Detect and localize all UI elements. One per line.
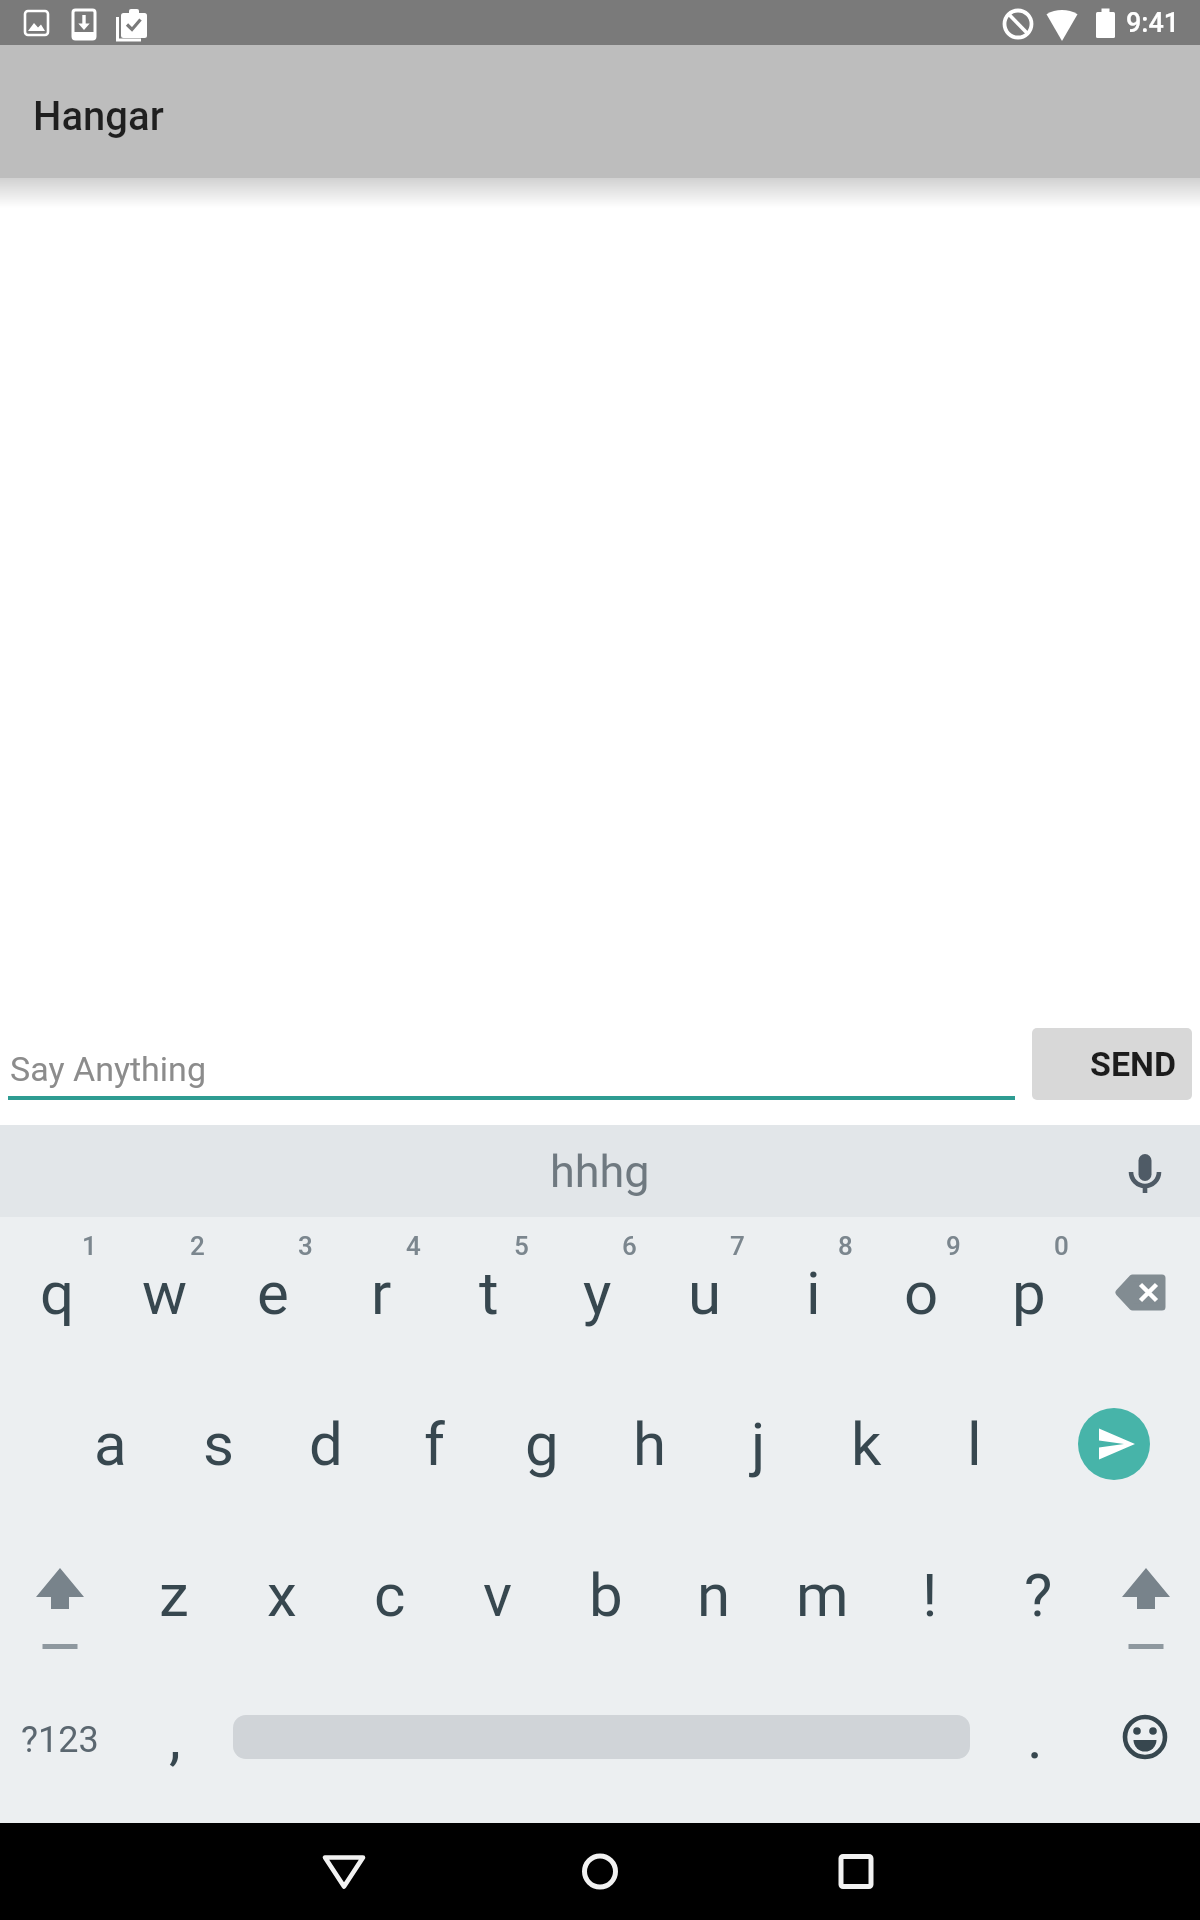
staticText: z <box>159 1560 189 1630</box>
staticText: , <box>169 1702 181 1772</box>
button[interactable]: , <box>120 1671 230 1823</box>
staticText: 3 <box>298 1231 313 1261</box>
button[interactable] <box>0 1519 120 1671</box>
button[interactable] <box>796 1823 916 1920</box>
staticText: . <box>1027 1702 1043 1772</box>
button[interactable]: e <box>219 1217 327 1368</box>
button[interactable]: t <box>435 1217 543 1368</box>
button[interactable] <box>540 1823 660 1920</box>
staticText: 9:41 <box>1126 7 1180 39</box>
button[interactable]: l <box>920 1368 1028 1519</box>
staticText: 7 <box>730 1231 745 1261</box>
staticText: m <box>796 1560 849 1630</box>
button[interactable] <box>1083 1217 1200 1368</box>
staticText: j <box>751 1409 766 1479</box>
button[interactable]: y <box>543 1217 651 1368</box>
button[interactable]: ! <box>876 1519 984 1671</box>
button[interactable]: f <box>380 1368 488 1519</box>
button[interactable]: v <box>444 1519 552 1671</box>
button[interactable]: p <box>975 1217 1083 1368</box>
staticText: x <box>267 1560 297 1630</box>
button[interactable]: o <box>867 1217 975 1368</box>
staticText: b <box>589 1560 623 1630</box>
staticText: g <box>525 1409 559 1479</box>
button[interactable]: q <box>3 1217 111 1368</box>
staticText: u <box>688 1258 722 1328</box>
button[interactable] <box>284 1823 404 1920</box>
staticText: ?123 <box>21 1719 99 1761</box>
staticText: ! <box>922 1560 938 1630</box>
staticText: Hangar <box>33 93 164 140</box>
staticText: a <box>94 1409 127 1479</box>
staticText: Say Anything <box>10 1049 206 1089</box>
button[interactable] <box>230 1671 970 1823</box>
staticText: p <box>1012 1258 1046 1328</box>
button[interactable]: c <box>336 1519 444 1671</box>
button[interactable]: x <box>228 1519 336 1671</box>
staticText: 9 <box>946 1231 961 1261</box>
staticText: s <box>203 1409 234 1479</box>
staticText: d <box>309 1409 343 1479</box>
button[interactable]: s <box>164 1368 272 1519</box>
staticText: v <box>483 1560 513 1630</box>
staticText: f <box>424 1409 445 1479</box>
button[interactable]: g <box>488 1368 596 1519</box>
staticText: n <box>697 1560 731 1630</box>
staticText: q <box>40 1258 75 1328</box>
staticText: w <box>142 1258 188 1328</box>
button[interactable]: . <box>970 1671 1100 1823</box>
button[interactable]: z <box>120 1519 228 1671</box>
button[interactable]: a <box>56 1368 164 1519</box>
staticText: e <box>257 1258 289 1328</box>
button[interactable]: r <box>327 1217 435 1368</box>
staticText: ? <box>1024 1560 1053 1630</box>
button[interactable]: b <box>552 1519 660 1671</box>
staticText: 0 <box>1054 1231 1069 1261</box>
button[interactable]: ? <box>984 1519 1092 1671</box>
staticText: r <box>371 1258 392 1328</box>
button[interactable]: h <box>596 1368 704 1519</box>
button[interactable]: u <box>651 1217 759 1368</box>
button[interactable]: d <box>272 1368 380 1519</box>
button[interactable] <box>1100 1671 1200 1823</box>
staticText: o <box>904 1258 939 1328</box>
staticText: 5 <box>514 1231 529 1261</box>
staticText: c <box>374 1560 406 1630</box>
staticText: y <box>583 1258 612 1328</box>
button[interactable]: k <box>812 1368 920 1519</box>
staticText: k <box>851 1409 882 1479</box>
staticText: i <box>806 1258 821 1328</box>
button[interactable]: i <box>759 1217 867 1368</box>
staticText: 6 <box>622 1231 637 1261</box>
staticText: SEND <box>1090 1044 1177 1084</box>
staticText: 2 <box>190 1231 205 1261</box>
staticText: t <box>479 1258 499 1328</box>
button[interactable]: n <box>660 1519 768 1671</box>
button[interactable] <box>1078 1408 1150 1480</box>
staticText: 4 <box>406 1231 421 1261</box>
staticText: 1 <box>82 1231 97 1261</box>
staticText: h <box>633 1409 667 1479</box>
button[interactable] <box>1092 1519 1200 1671</box>
staticText: hhhg <box>550 1145 650 1198</box>
button[interactable] <box>1108 1125 1200 1217</box>
button[interactable]: m <box>768 1519 876 1671</box>
staticText: 8 <box>838 1231 853 1261</box>
button[interactable]: j <box>704 1368 812 1519</box>
button[interactable]: w <box>111 1217 219 1368</box>
staticText: l <box>967 1409 982 1479</box>
button[interactable]: ?123 <box>0 1671 120 1823</box>
button[interactable]: SEND <box>1032 1028 1192 1100</box>
